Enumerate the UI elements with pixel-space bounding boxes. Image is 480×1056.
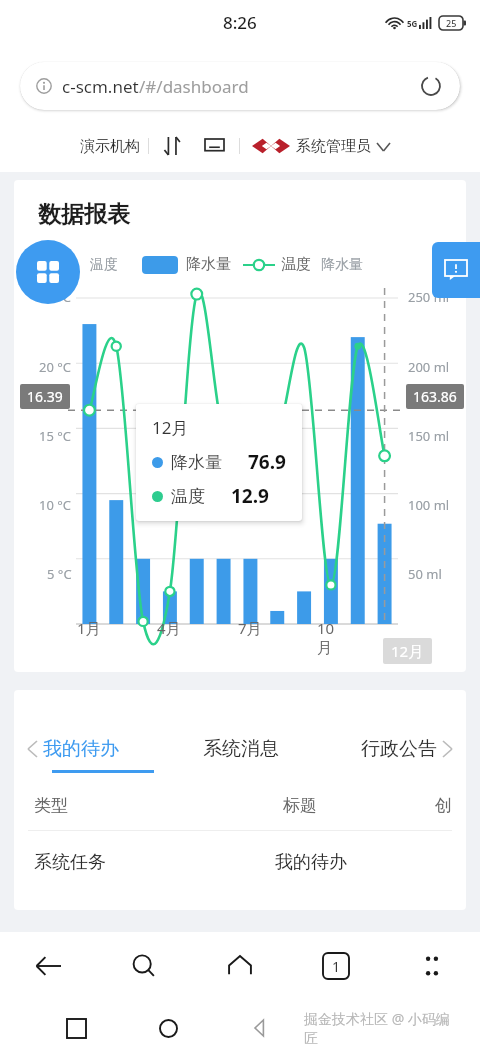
staticText: 250 ml bbox=[408, 288, 450, 306]
button[interactable]: 行政公告 bbox=[361, 737, 437, 761]
staticText: 系统任务 bbox=[34, 851, 106, 874]
staticText: 创 bbox=[435, 795, 452, 816]
staticText: 7月 bbox=[238, 618, 262, 638]
staticText: 1月 bbox=[77, 618, 101, 638]
staticText: c-scm.net bbox=[62, 75, 139, 98]
button[interactable]: Messages bbox=[201, 133, 227, 159]
staticText: 15 °C bbox=[39, 427, 72, 445]
button[interactable]: Recents bbox=[57, 1009, 95, 1047]
button[interactable]: 系统任务 bbox=[14, 851, 466, 874]
staticText: 数据报表 bbox=[38, 200, 130, 229]
button[interactable]: 我的待办 bbox=[43, 737, 119, 761]
staticText: 8:26 bbox=[223, 11, 257, 34]
button[interactable]: Reload bbox=[418, 73, 444, 99]
staticText: 163.86 bbox=[413, 387, 457, 406]
staticText: 200 ml bbox=[408, 358, 450, 376]
staticText: 温度 bbox=[281, 255, 311, 274]
staticText: 1 bbox=[332, 957, 341, 976]
staticText: 温度 bbox=[171, 486, 205, 507]
staticText: 20 °C bbox=[39, 358, 72, 376]
staticText: 降水量 bbox=[321, 256, 363, 274]
staticText: 25 bbox=[446, 17, 457, 29]
button[interactable]: Home bbox=[149, 1009, 187, 1047]
staticText: 我的待办 bbox=[275, 851, 347, 874]
staticText: 5 °C bbox=[47, 565, 72, 583]
staticText: 系统管理员 bbox=[296, 137, 371, 156]
button[interactable]: Apps bbox=[16, 240, 80, 304]
staticText: 50 ml bbox=[408, 565, 442, 583]
button[interactable]: 演示机构 bbox=[80, 137, 140, 156]
button[interactable]: c-scm.net bbox=[20, 62, 460, 110]
staticText: 76.9 bbox=[248, 449, 286, 475]
staticText: 25 °C bbox=[39, 288, 72, 306]
button[interactable]: Search bbox=[122, 944, 166, 988]
staticText: 5G bbox=[407, 18, 418, 29]
button[interactable]: Back bbox=[26, 944, 70, 988]
staticText: 类型 bbox=[34, 795, 68, 816]
staticText: 标题 bbox=[283, 795, 317, 816]
button[interactable]: 系统消息 bbox=[203, 737, 279, 761]
staticText: /#/dashboard bbox=[139, 75, 249, 98]
staticText: 4月 bbox=[157, 618, 181, 638]
button[interactable]: 系统管理员 bbox=[296, 137, 390, 156]
button[interactable]: More bbox=[410, 944, 454, 988]
staticText: 16.39 bbox=[27, 387, 63, 406]
staticText: 12月 bbox=[152, 416, 189, 439]
staticText: 温度 bbox=[90, 256, 118, 274]
button[interactable]: Tabs bbox=[319, 949, 353, 983]
staticText: 降水量 bbox=[171, 452, 222, 473]
staticText: 10月 bbox=[317, 618, 344, 658]
staticText: 12.9 bbox=[231, 483, 269, 509]
staticText: 掘金技术社区 @ 小码编匠 bbox=[304, 1009, 450, 1047]
staticText: 100 ml bbox=[408, 496, 450, 514]
button[interactable]: Sort bbox=[159, 133, 185, 159]
staticText: 150 ml bbox=[408, 427, 450, 445]
button[interactable]: Home bbox=[218, 944, 262, 988]
staticText: 降水量 bbox=[186, 255, 231, 274]
button[interactable]: Feedback bbox=[432, 242, 480, 298]
staticText: 10 °C bbox=[39, 496, 72, 514]
staticText: 12月 bbox=[391, 641, 424, 661]
